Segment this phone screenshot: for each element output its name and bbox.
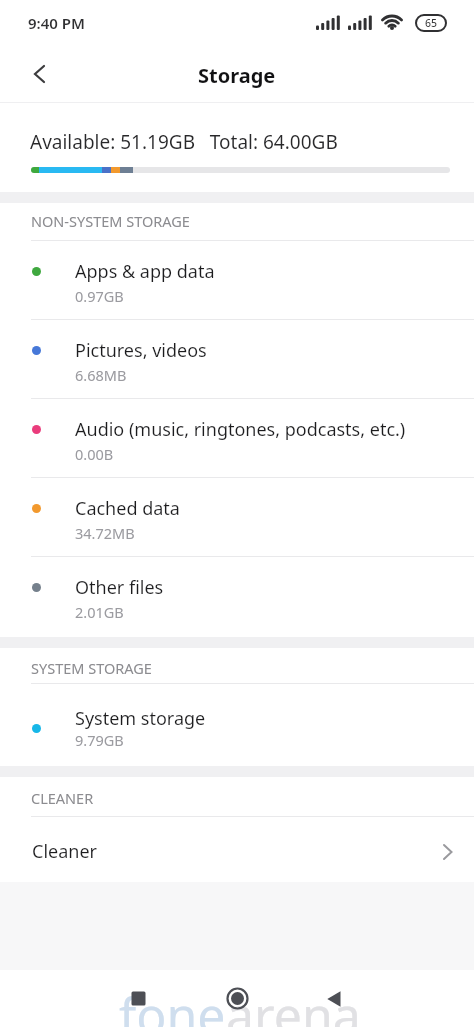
staticText: arena [226,981,361,1027]
staticText: Pictures, videos [75,338,207,363]
button[interactable]: Audio (music, ringtones, podcasts, etc.) [0,399,474,478]
staticText: Audio (music, ringtones, podcasts, etc.) [75,417,406,442]
staticText: fone [119,981,226,1027]
button[interactable] [28,62,52,86]
staticText: 2.01GB [75,602,124,622]
staticText: Apps & app data [75,259,215,284]
button[interactable] [118,978,158,1018]
button[interactable] [217,978,257,1018]
button[interactable]: Apps & app data [0,241,474,320]
staticText: Storage [198,62,276,89]
staticText: SYSTEM STORAGE [31,658,152,678]
staticText: Cached data [75,496,180,521]
staticText: Cleaner [32,839,97,864]
staticText: Other files [75,575,164,600]
button[interactable]: Pictures, videos [0,320,474,399]
staticText: 0.97GB [75,286,124,306]
staticText: NON-SYSTEM STORAGE [31,211,190,231]
button[interactable]: Cached data [0,478,474,557]
button[interactable]: System storage [0,684,474,766]
button[interactable]: Other files [0,557,474,637]
staticText: 34.72MB [75,523,135,543]
button[interactable]: Cleaner [0,817,474,882]
staticText: 9.79GB [75,730,124,750]
staticText: 65 [425,16,438,30]
staticText: System storage [75,706,206,731]
staticText: 0.00B [75,444,114,464]
staticText: 6.68MB [75,365,127,385]
staticText: Available: 51.19GB Total: 64.00GB [30,129,338,155]
button[interactable] [314,978,354,1018]
staticText: 9:40 PM [28,13,85,33]
staticText: CLEANER [31,788,94,808]
